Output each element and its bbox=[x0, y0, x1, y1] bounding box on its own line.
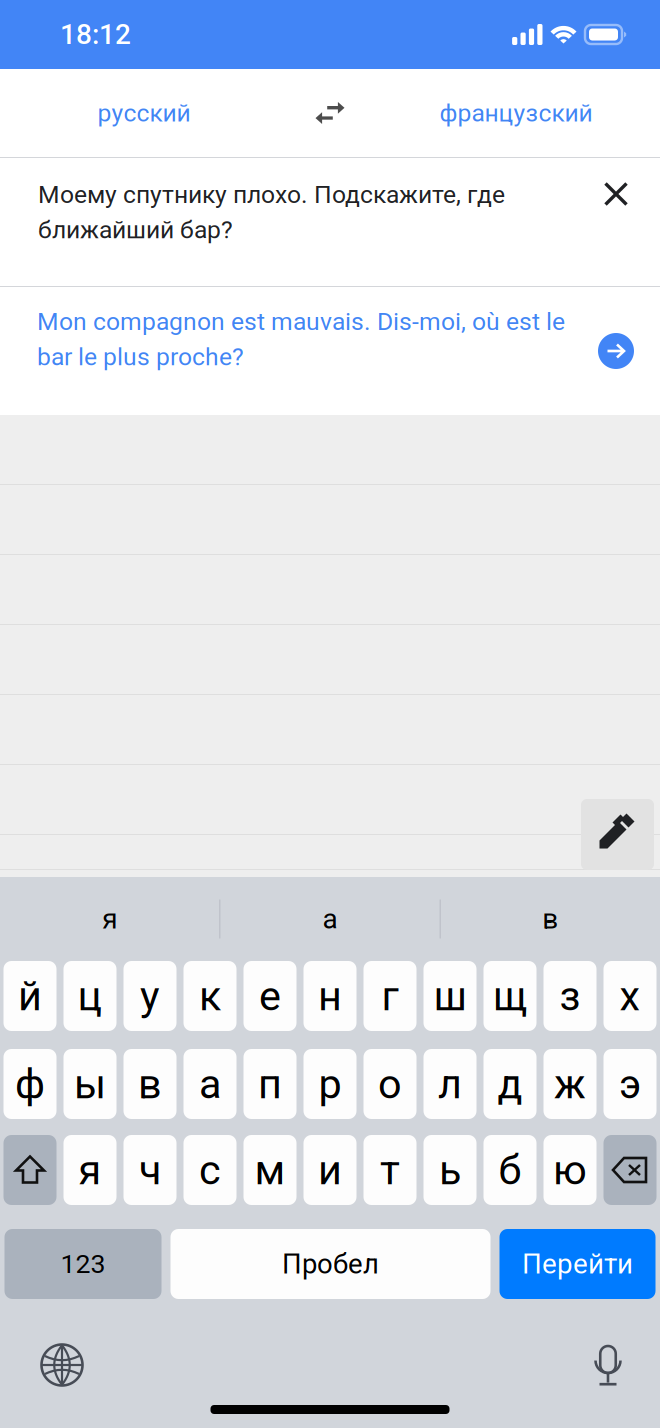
button[interactable]: ч bbox=[123, 1135, 176, 1205]
staticText: ж bbox=[554, 1060, 586, 1108]
button[interactable]: е bbox=[243, 961, 296, 1031]
button[interactable]: ю bbox=[543, 1135, 596, 1205]
button[interactable]: Next keyboard bbox=[31, 1334, 93, 1396]
staticText: ч bbox=[139, 1146, 161, 1194]
staticText: е bbox=[259, 972, 281, 1020]
staticText: 18:12 bbox=[60, 18, 131, 51]
button[interactable]: у bbox=[123, 961, 176, 1031]
button[interactable]: в bbox=[441, 877, 660, 961]
staticText: я bbox=[102, 903, 117, 935]
staticText: а bbox=[322, 903, 337, 935]
button[interactable]: Clear text bbox=[588, 166, 644, 222]
staticText: и bbox=[318, 1146, 342, 1194]
staticText: э bbox=[619, 1060, 641, 1108]
button[interactable]: ь bbox=[423, 1135, 476, 1205]
button[interactable]: ж bbox=[543, 1049, 596, 1119]
button[interactable]: т bbox=[363, 1135, 416, 1205]
staticText: у bbox=[140, 972, 160, 1020]
button[interactable]: ф bbox=[3, 1049, 56, 1119]
staticText: ш bbox=[433, 972, 466, 1020]
staticText: Моему спутнику плохо. Подскажите, где бл… bbox=[38, 180, 505, 244]
button[interactable]: Swap languages bbox=[288, 69, 372, 157]
staticText: ь bbox=[439, 1146, 461, 1194]
staticText: 123 bbox=[60, 1248, 105, 1280]
staticText: Пробел bbox=[282, 1248, 379, 1280]
staticText: ю bbox=[553, 1146, 587, 1194]
button[interactable]: б bbox=[483, 1135, 536, 1205]
button[interactable]: русский bbox=[0, 69, 288, 157]
staticText: я bbox=[78, 1146, 101, 1194]
button[interactable]: ш bbox=[423, 961, 476, 1031]
button[interactable]: л bbox=[423, 1049, 476, 1119]
button[interactable]: и bbox=[303, 1135, 356, 1205]
button[interactable]: Open translation bbox=[588, 323, 644, 379]
button[interactable]: Delete bbox=[603, 1135, 656, 1205]
button[interactable]: я bbox=[0, 877, 219, 961]
staticText: ы bbox=[74, 1060, 106, 1108]
staticText: м bbox=[254, 1146, 285, 1194]
staticText: з bbox=[559, 972, 580, 1020]
button[interactable]: Перейти bbox=[499, 1229, 655, 1299]
button[interactable]: Handwriting input bbox=[581, 799, 654, 870]
staticText: ц bbox=[77, 972, 102, 1020]
button[interactable]: н bbox=[303, 961, 356, 1031]
staticText: п bbox=[258, 1060, 282, 1108]
staticText: л bbox=[438, 1060, 462, 1108]
button[interactable]: ы bbox=[63, 1049, 116, 1119]
staticText: а bbox=[199, 1060, 221, 1108]
button[interactable]: 123 bbox=[4, 1229, 161, 1299]
staticText: русский bbox=[97, 98, 190, 127]
button[interactable]: й bbox=[3, 961, 56, 1031]
button[interactable]: Dictation bbox=[577, 1334, 639, 1396]
staticText: к bbox=[199, 972, 221, 1020]
button[interactable]: э bbox=[603, 1049, 656, 1119]
staticText: г bbox=[381, 972, 398, 1020]
button[interactable]: р bbox=[303, 1049, 356, 1119]
staticText: с bbox=[199, 1146, 221, 1194]
button[interactable]: а bbox=[183, 1049, 236, 1119]
staticText: б bbox=[498, 1146, 521, 1194]
button[interactable]: з bbox=[543, 961, 596, 1031]
staticText: т bbox=[380, 1146, 400, 1194]
button[interactable]: п bbox=[243, 1049, 296, 1119]
button[interactable]: с bbox=[183, 1135, 236, 1205]
button[interactable]: Shift bbox=[3, 1135, 56, 1205]
button[interactable]: к bbox=[183, 961, 236, 1031]
button[interactable]: г bbox=[363, 961, 416, 1031]
staticText: Перейти bbox=[522, 1248, 633, 1280]
button[interactable]: м bbox=[243, 1135, 296, 1205]
button[interactable]: о bbox=[363, 1049, 416, 1119]
button[interactable]: в bbox=[123, 1049, 176, 1119]
button[interactable]: французский bbox=[372, 69, 660, 157]
staticText: щ bbox=[493, 972, 527, 1020]
button[interactable]: х bbox=[603, 961, 656, 1031]
button[interactable]: я bbox=[63, 1135, 116, 1205]
button[interactable]: Пробел bbox=[170, 1229, 490, 1299]
staticText: в bbox=[138, 1060, 162, 1108]
staticText: н bbox=[318, 972, 342, 1020]
button[interactable]: а bbox=[220, 877, 440, 961]
staticText: французский bbox=[439, 98, 592, 127]
button[interactable]: д bbox=[483, 1049, 536, 1119]
staticText: Mon compagnon est mauvais. Dis-moi, où e… bbox=[37, 307, 565, 371]
staticText: й bbox=[18, 972, 42, 1020]
staticText: х bbox=[619, 972, 640, 1020]
button[interactable]: ц bbox=[63, 961, 116, 1031]
staticText: в bbox=[542, 903, 558, 935]
staticText: д bbox=[497, 1060, 522, 1108]
staticText: ф bbox=[15, 1060, 45, 1108]
staticText: о bbox=[378, 1060, 402, 1108]
staticText: р bbox=[318, 1060, 341, 1108]
button[interactable]: щ bbox=[483, 961, 536, 1031]
